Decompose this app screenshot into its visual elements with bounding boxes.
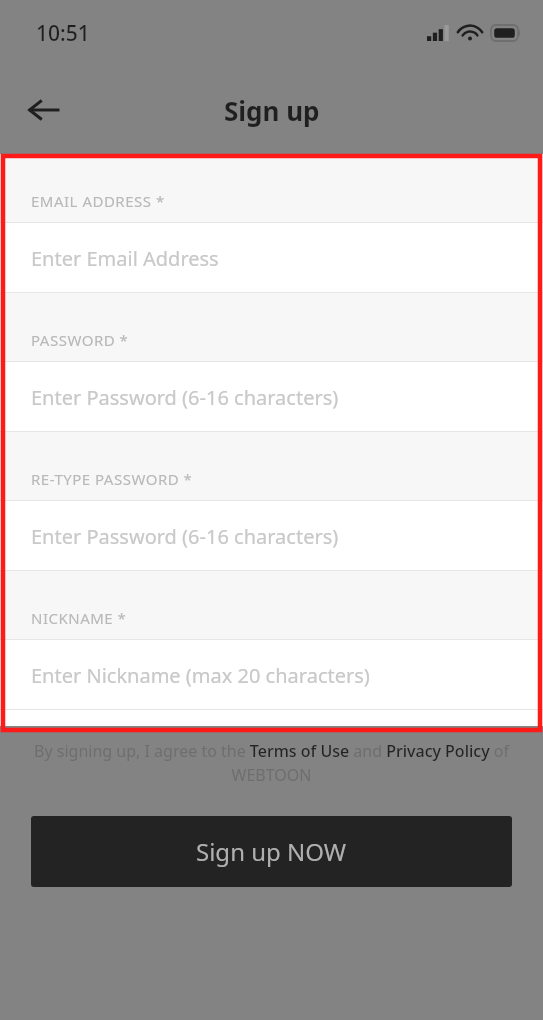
staticText: By signing up, I agree to the Terms of U… [18,740,525,786]
button[interactable]: Enter Password (6-16 characters) [0,362,543,432]
staticText: Enter Nickname (max 20 characters) [31,662,370,689]
staticText: RE-TYPE PASSWORD * [31,469,193,489]
button[interactable]: Enter Email Address [0,223,543,293]
staticText: Enter Password (6-16 characters) [31,384,339,411]
button[interactable]: Enter Nickname (max 20 characters) [0,640,543,710]
staticText: Sign up [224,93,320,128]
staticText: EMAIL ADDRESS * [31,191,165,211]
button[interactable]: Back [17,84,69,136]
staticText: PASSWORD * [31,330,129,350]
button[interactable]: Enter Password (6-16 characters) [0,501,543,571]
button[interactable]: Sign up NOW [31,816,512,887]
staticText: NICKNAME * [31,608,127,628]
staticText: 10:51 [36,19,90,48]
staticText: Enter Email Address [31,245,219,272]
staticText: Enter Password (6-16 characters) [31,523,339,550]
staticText: Sign up NOW [196,835,347,868]
